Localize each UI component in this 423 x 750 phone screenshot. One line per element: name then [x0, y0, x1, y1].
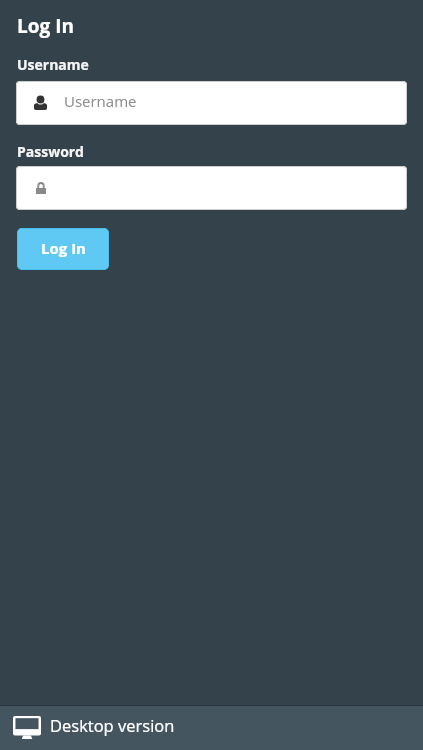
staticText: Log In — [41, 238, 86, 258]
staticText: Desktop version — [50, 714, 175, 736]
button[interactable]: Username — [16, 81, 407, 125]
staticText: Username — [17, 55, 89, 74]
staticText: Username — [64, 91, 137, 111]
other: Desktop version — [13, 716, 41, 739]
button[interactable]: Desktop version — [0, 706, 423, 750]
button[interactable]: Log In — [17, 228, 109, 270]
staticText: Log In — [17, 13, 74, 39]
staticText: Password — [17, 142, 84, 161]
button[interactable] — [16, 166, 407, 210]
